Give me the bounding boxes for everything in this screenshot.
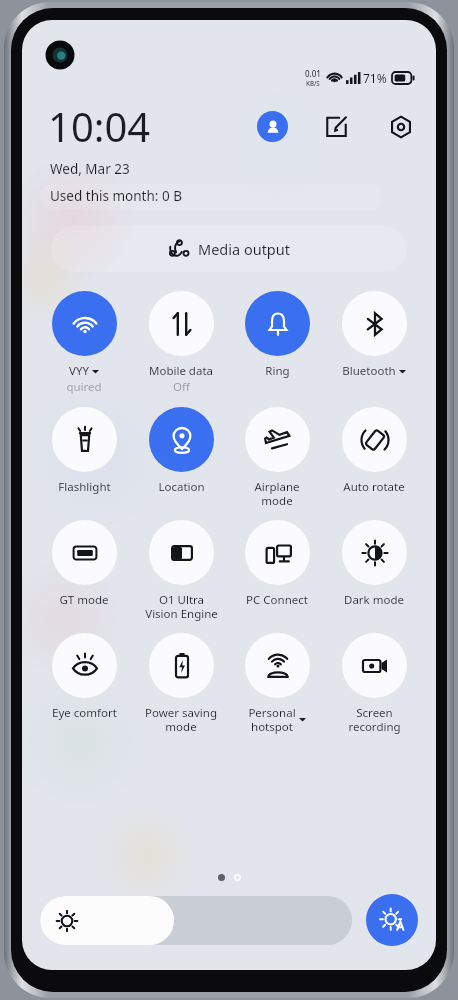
- button[interactable]: Eye comfort: [38, 633, 130, 721]
- staticText: PC Connect: [246, 592, 308, 608]
- staticText: Ring: [265, 363, 290, 379]
- staticText: Eye comfort: [52, 705, 117, 721]
- button[interactable]: Airplane mode: [231, 407, 323, 508]
- staticText: Mobile data: [149, 363, 213, 379]
- staticText: Media output: [198, 239, 290, 259]
- staticText: Airplane mode: [254, 479, 300, 508]
- staticText: VYY: [69, 363, 89, 379]
- button[interactable]: GT mode: [38, 520, 130, 608]
- button[interactable]: Location: [135, 407, 227, 495]
- button[interactable]: Auto rotate: [328, 407, 420, 495]
- button[interactable]: PC Connect: [231, 520, 323, 608]
- staticText: Used this month: 0 B: [50, 187, 182, 205]
- button[interactable]: Auto brightness: [366, 894, 418, 946]
- button[interactable]: VYY: [38, 291, 130, 395]
- button[interactable]: User profile: [257, 111, 288, 142]
- staticText: quired: [66, 379, 102, 395]
- staticText: Auto rotate: [343, 479, 405, 495]
- button[interactable]: Flashlight: [38, 407, 130, 495]
- button[interactable]: Power saving mode: [135, 633, 227, 734]
- button[interactable]: Mobile data: [135, 291, 227, 395]
- button[interactable]: Screen recording: [328, 633, 420, 734]
- staticText: Flashlight: [58, 479, 111, 495]
- staticText: Power saving mode: [145, 705, 217, 734]
- button[interactable]: Dark mode: [328, 520, 420, 608]
- staticText: 10:04: [48, 99, 151, 153]
- staticText: O1 Ultra Vision Engine: [145, 592, 218, 621]
- staticText: 0.01: [305, 68, 321, 79]
- staticText: Off: [173, 379, 190, 395]
- staticText: Location: [158, 479, 205, 495]
- button[interactable]: Settings: [385, 111, 416, 142]
- staticText: Personal hotspot: [248, 705, 296, 734]
- staticText: GT mode: [59, 592, 109, 608]
- staticText: Bluetooth: [342, 363, 396, 379]
- staticText: Dark mode: [344, 592, 404, 608]
- button[interactable]: Bluetooth: [328, 291, 420, 379]
- staticText: Screen recording: [348, 705, 401, 734]
- button[interactable]: Ring: [231, 291, 323, 379]
- staticText: KB/S: [306, 79, 320, 87]
- staticText: Wed, Mar 23: [50, 160, 130, 178]
- button[interactable]: [40, 896, 352, 945]
- button[interactable]: Edit tiles: [321, 111, 352, 142]
- button[interactable]: Media output: [51, 226, 407, 272]
- button[interactable]: Personal hotspot: [231, 633, 323, 734]
- button[interactable]: O1 Ultra Vision Engine: [135, 520, 227, 621]
- staticText: 71%: [363, 70, 387, 86]
